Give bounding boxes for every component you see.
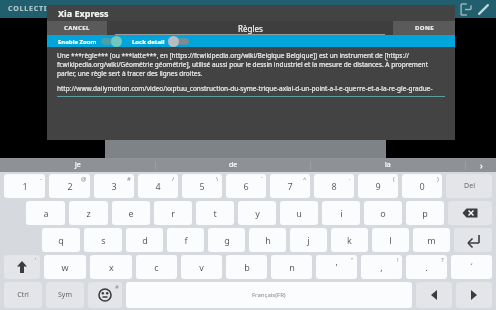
staticText: m [427,234,436,246]
staticText: Une ***règle*** (ou ***latte***, en [htt… [57,51,445,78]
button[interactable]: Français(FR) [126,282,412,308]
button[interactable]: Del [446,174,492,198]
staticText: t [213,207,217,219]
staticText: › [480,159,483,171]
button[interactable]: de [156,158,310,172]
button[interactable]: Right [456,282,492,308]
staticText: Français(FR) [252,291,286,299]
button[interactable]: More suggestions [466,158,496,172]
staticText: ( [393,175,395,183]
button[interactable]: , [361,255,402,279]
button[interactable]: 8 [314,174,354,198]
staticText: y [255,207,260,219]
staticText: ! [397,256,399,264]
staticText: ) [437,175,439,183]
staticText: - [40,175,42,183]
staticText: Règles [238,23,263,34]
staticText: ? [441,256,444,264]
button[interactable]: Play [438,0,456,18]
staticText: ^ [303,175,307,183]
staticText: d [142,234,148,246]
button[interactable]: 9 [358,174,398,198]
button[interactable]: la [311,158,465,172]
button[interactable]: m [413,228,450,252]
button[interactable]: Shift [4,255,40,279]
staticText: " [351,256,354,264]
button[interactable]: Règles [107,21,393,35]
button[interactable]: DONE [393,21,455,35]
staticText: # [115,283,119,291]
button[interactable]: y [238,201,276,225]
button[interactable]: Enter [454,228,492,252]
button[interactable]: . [406,255,447,279]
button[interactable]: t [196,201,234,225]
button[interactable]: z [69,201,108,225]
button[interactable]: f [167,228,204,252]
button[interactable]: r [154,201,192,225]
button[interactable]: v [181,255,222,279]
button[interactable]: 5 [182,174,222,198]
button[interactable]: Enable Zoom [58,36,122,47]
button[interactable]: 7 [270,174,310,198]
button[interactable]: q [42,228,80,252]
button[interactable]: b [226,255,267,279]
button[interactable]: je [0,158,155,172]
button[interactable]: ´ [451,255,492,279]
staticText: / [172,175,175,183]
button[interactable]: u [280,201,318,225]
button[interactable]: Sym [46,282,84,308]
button[interactable]: g [208,228,245,252]
staticText: c [154,261,159,273]
button[interactable]: Left [416,282,452,308]
staticText: ' [335,261,338,273]
staticText: 9 [375,180,381,192]
staticText: je [75,160,81,170]
button[interactable]: Edit [474,0,492,18]
button[interactable]: 2 [49,174,90,198]
button[interactable]: Lock detail [132,36,190,47]
button[interactable]: o [364,201,402,225]
staticText: s [101,234,106,246]
staticText: ' [35,256,37,264]
staticText: de [229,160,238,170]
staticText: f [184,234,188,246]
staticText: j [307,234,310,246]
staticText: 7 [287,180,293,192]
button[interactable]: j [290,228,327,252]
button[interactable]: d [126,228,163,252]
button[interactable]: i [322,201,360,225]
staticText: \ [216,175,219,183]
button[interactable]: Ctrl [4,282,42,308]
staticText: w [61,261,69,273]
button[interactable]: 6 [226,174,266,198]
button[interactable]: k [331,228,368,252]
staticText: k [347,234,352,246]
staticText: CANCEL [64,24,90,32]
button[interactable]: ' [316,255,357,279]
button[interactable]: e [112,201,150,225]
button[interactable]: n [271,255,312,279]
button[interactable]: p [406,201,444,225]
button[interactable]: l [372,228,409,252]
button[interactable]: 4 [138,174,178,198]
staticText: la [385,160,391,170]
button[interactable]: CANCEL [47,21,107,35]
staticText: i [340,207,343,219]
staticText: 4 [155,180,161,192]
staticText: e [128,207,134,219]
button[interactable]: 3 [94,174,134,198]
button[interactable]: 0 [402,174,442,198]
button[interactable]: 1 [4,174,45,198]
staticText: # [127,175,131,183]
staticText: , [380,261,383,273]
button[interactable]: w [44,255,86,279]
button[interactable]: c [136,255,177,279]
button[interactable]: Backspace [448,201,492,225]
button[interactable]: Export [456,0,474,18]
staticText: u [296,207,302,219]
button[interactable]: Emoji [88,282,122,308]
button[interactable]: a [26,201,65,225]
button[interactable]: h [249,228,286,252]
button[interactable]: s [84,228,122,252]
button[interactable]: x [90,255,132,279]
